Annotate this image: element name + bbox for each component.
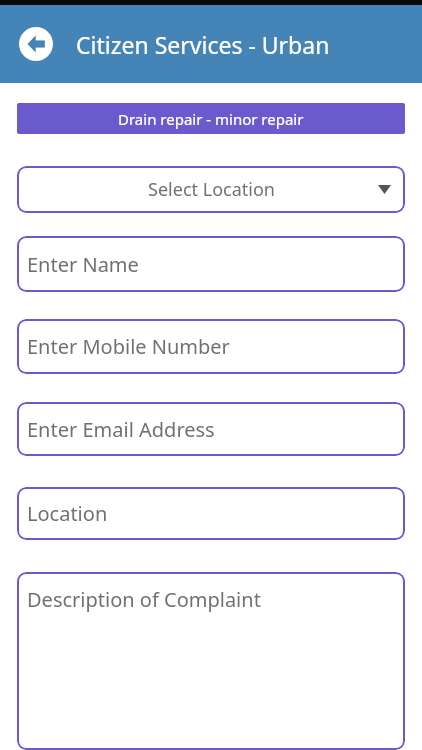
button[interactable]: Back	[14, 22, 58, 66]
staticText: Drain repair - minor repair	[118, 109, 304, 129]
button[interactable]: Enter Name	[17, 236, 405, 292]
button[interactable]: Enter Email Address	[17, 402, 405, 456]
button[interactable]: Drain repair - minor repair	[17, 103, 405, 134]
button[interactable]: Description of Complaint	[17, 572, 405, 750]
staticText: Enter Email Address	[27, 416, 215, 443]
button[interactable]: Location	[17, 487, 405, 540]
button[interactable]: Enter Mobile Number	[17, 319, 405, 374]
staticText: Description of Complaint	[27, 586, 261, 613]
staticText: Location	[27, 500, 108, 527]
staticText: Citizen Services - Urban	[76, 29, 330, 60]
staticText: Select Location	[148, 177, 275, 202]
staticText: Enter Name	[27, 251, 139, 278]
button[interactable]: Select Location	[17, 166, 405, 213]
staticText: Enter Mobile Number	[27, 333, 230, 360]
